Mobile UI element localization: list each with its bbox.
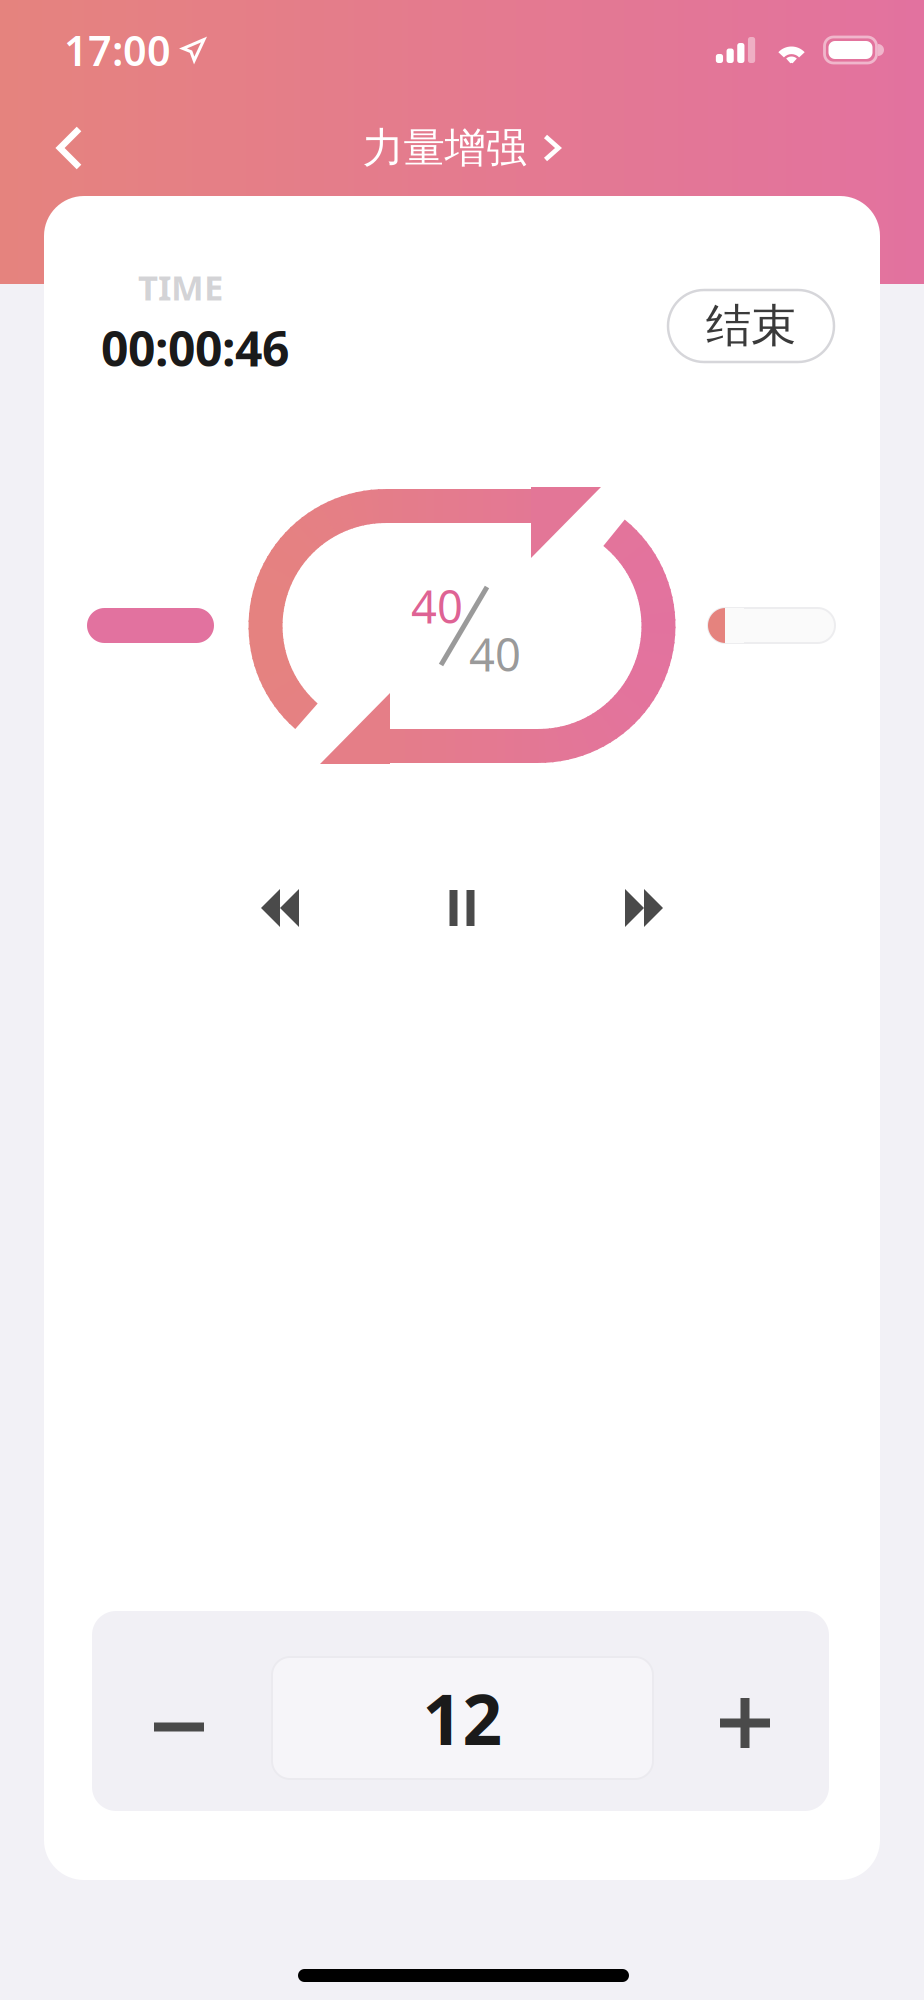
staticText: TIME <box>138 264 223 310</box>
button[interactable]: Previous <box>220 860 340 956</box>
staticText: 40 <box>411 576 463 636</box>
staticText: 00:00:46 <box>101 316 289 380</box>
staticText: 40 <box>469 624 521 684</box>
button[interactable]: 12 <box>272 1657 653 1779</box>
staticText: 12 <box>422 1672 502 1764</box>
button[interactable]: Next <box>584 860 704 956</box>
button[interactable]: Increase <box>660 1623 830 1823</box>
staticText: 结束 <box>706 298 796 354</box>
staticText: 力量增强 <box>362 123 526 173</box>
button[interactable]: 结束 <box>668 290 834 362</box>
button[interactable]: Pause <box>402 860 522 956</box>
button[interactable]: 力量增强 <box>350 115 573 181</box>
button[interactable]: Back <box>40 112 100 184</box>
staticText: 17:00 <box>64 23 171 77</box>
button[interactable]: Decrease <box>94 1627 264 1827</box>
